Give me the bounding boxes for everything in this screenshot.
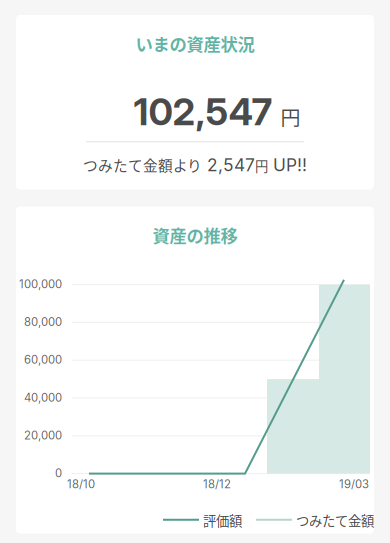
staticText: つみたて金額より [83, 154, 202, 175]
staticText: 2,547 [202, 154, 255, 175]
staticText: 100,000 [19, 277, 62, 291]
staticText: 40,000 [24, 391, 62, 404]
staticText: 19/03 [339, 477, 369, 491]
staticText: つみたて金額 [296, 511, 374, 530]
staticText: 102,547 [133, 89, 272, 134]
staticText: 評価額 [203, 511, 242, 530]
staticText: 60,000 [24, 353, 62, 366]
staticText: 円 [280, 102, 300, 131]
staticText: 80,000 [24, 315, 62, 329]
staticText: 資産の推移 [152, 222, 237, 248]
staticText: 20,000 [24, 428, 62, 442]
staticText: いまの資産状況 [135, 31, 254, 56]
staticText: 18/12 [203, 477, 231, 491]
staticText: 18/10 [67, 477, 95, 491]
staticText: 円 [255, 156, 268, 175]
staticText: UP!! [268, 154, 307, 175]
staticText: 0 [55, 466, 62, 480]
